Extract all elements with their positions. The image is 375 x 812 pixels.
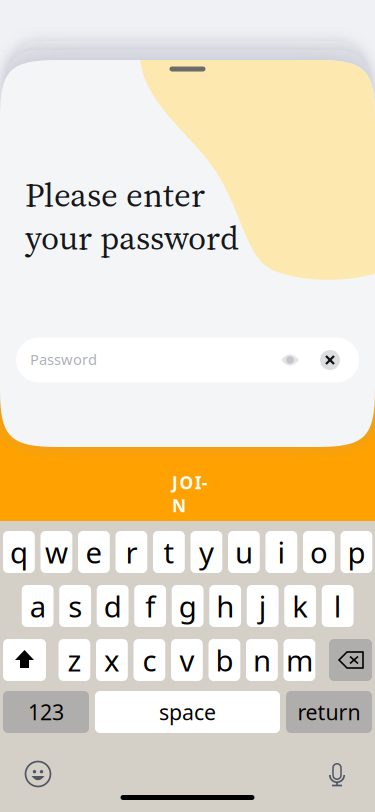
button[interactable]: c	[133, 639, 165, 681]
button[interactable]: d	[97, 585, 129, 627]
staticText: r	[125, 532, 137, 571]
button[interactable]: k	[284, 585, 316, 627]
staticText: c	[142, 640, 156, 679]
staticText: u	[235, 532, 253, 571]
button[interactable]: f	[134, 585, 166, 627]
staticText: j	[259, 586, 267, 625]
button[interactable]: s	[59, 585, 91, 627]
staticText: v	[179, 640, 194, 679]
staticText: h	[216, 586, 234, 625]
staticText: k	[292, 586, 308, 625]
button[interactable]: JOIN	[0, 460, 375, 516]
button[interactable]: l	[322, 585, 354, 627]
button[interactable]: u	[228, 531, 260, 573]
button[interactable]: r	[115, 531, 147, 573]
button[interactable]: Dictate	[315, 752, 359, 796]
button[interactable]: x	[96, 639, 128, 681]
button[interactable]: y	[190, 531, 222, 573]
staticText: s	[68, 586, 82, 625]
button[interactable]: j	[247, 585, 279, 627]
staticText: i	[277, 532, 285, 571]
staticText: f	[145, 586, 155, 625]
staticText: m	[286, 640, 313, 679]
button[interactable]: w	[40, 531, 72, 573]
button[interactable]: t	[153, 531, 185, 573]
button[interactable]: Emoji	[16, 752, 60, 796]
button[interactable]: return	[286, 691, 372, 733]
button[interactable]: g	[172, 585, 204, 627]
staticText: e	[85, 532, 102, 571]
button[interactable]: Clear	[315, 345, 345, 375]
button[interactable]: b	[208, 639, 240, 681]
button[interactable]: p	[340, 531, 372, 573]
staticText: your password	[25, 215, 239, 261]
button[interactable]: m	[283, 639, 315, 681]
button[interactable]: e	[78, 531, 110, 573]
staticText: t	[163, 532, 174, 571]
button[interactable]: space	[95, 691, 280, 733]
button[interactable]: q	[3, 531, 35, 573]
button[interactable]: v	[171, 639, 203, 681]
staticText: Please enter	[25, 172, 205, 218]
staticText: return	[297, 698, 360, 726]
button[interactable]: 123	[3, 691, 89, 733]
staticText: Password	[30, 349, 97, 369]
button[interactable]: z	[58, 639, 90, 681]
staticText: n	[253, 640, 271, 679]
button[interactable]: Shift	[3, 639, 46, 681]
staticText: z	[67, 640, 81, 679]
button[interactable]: i	[265, 531, 297, 573]
button[interactable]: Delete	[329, 639, 372, 681]
staticText: l	[334, 586, 342, 625]
staticText: JOIN	[172, 471, 217, 494]
staticText: b	[215, 640, 233, 679]
button[interactable]: n	[246, 639, 278, 681]
staticText: d	[104, 586, 122, 625]
button[interactable]: a	[22, 585, 54, 627]
staticText: x	[104, 640, 120, 679]
staticText: p	[347, 532, 365, 571]
button[interactable]: o	[303, 531, 335, 573]
staticText: g	[179, 586, 197, 625]
staticText: o	[310, 532, 328, 571]
staticText: 123	[28, 698, 64, 726]
button[interactable]: h	[209, 585, 241, 627]
staticText: a	[30, 586, 46, 625]
staticText: w	[45, 532, 68, 571]
button[interactable]: Show password	[273, 343, 307, 377]
staticText: q	[10, 532, 28, 571]
staticText: space	[159, 698, 216, 726]
staticText: y	[199, 532, 214, 571]
